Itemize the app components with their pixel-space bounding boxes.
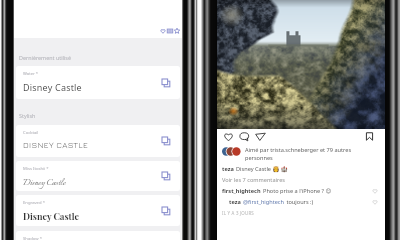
button[interactable]: Keyboard [167, 28, 173, 34]
button[interactable]: Like [223, 131, 234, 142]
button[interactable]: Voir les 7 commentaires [222, 176, 285, 184]
button[interactable]: Copy text [161, 78, 171, 88]
staticText: Disney Castle [23, 210, 80, 222]
staticText: Cocktail [23, 130, 39, 136]
staticText: teza [229, 198, 243, 206]
staticText: Engraved * [23, 200, 45, 206]
button[interactable]: Shadow * [16, 231, 180, 240]
button[interactable]: Miss Itoshii * [16, 161, 180, 191]
staticText: Photo prise a l'iPhone ? 😊 [263, 187, 332, 195]
staticText: Disney Castle [23, 81, 82, 93]
staticText: 👸 🏰 [271, 165, 288, 173]
staticText: first_hightech [222, 187, 263, 195]
staticText: Miss Itoshii * [23, 166, 49, 172]
button[interactable]: Share post [255, 131, 266, 142]
button[interactable]: Engraved * [16, 195, 180, 226]
staticText: Disney Castle [236, 165, 271, 173]
staticText: Shadow * [23, 236, 42, 240]
staticText: Aimé par trista.schneberger et 79 autres… [245, 146, 352, 162]
button[interactable]: Like reply [372, 199, 378, 205]
staticText: DISNEY CASTLE [23, 140, 89, 150]
button[interactable]: Rate app [174, 28, 180, 34]
button[interactable]: Like comment [372, 188, 378, 194]
button[interactable]: Save post [364, 131, 375, 142]
staticText: IL Y A 3 JOURS [222, 210, 254, 216]
button[interactable]: Cocktail [16, 125, 180, 157]
staticText: Voir les 7 commentaires [222, 176, 285, 184]
staticText: teza [222, 165, 236, 173]
button[interactable]: Copy text [161, 136, 171, 146]
staticText: Water * [23, 71, 39, 77]
staticText: Stylish [19, 112, 36, 119]
button[interactable]: Water * [16, 66, 180, 99]
button[interactable]: Copy text [161, 206, 171, 216]
button[interactable]: Comment [239, 131, 250, 142]
staticText: toujours :) [285, 198, 314, 206]
button[interactable]: Copy text [161, 171, 171, 181]
staticText: Dernièrement utilisé [19, 54, 71, 61]
staticText: Disney Castle [23, 176, 66, 190]
staticText: @first_hightech [243, 198, 285, 206]
button[interactable]: Favourites [160, 28, 166, 34]
